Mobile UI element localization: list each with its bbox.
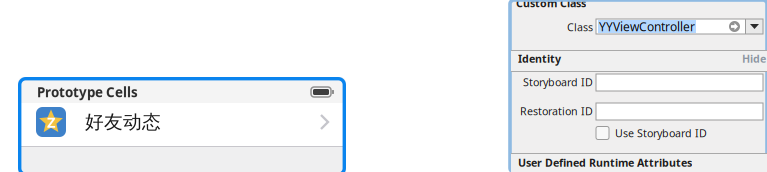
staticText: 好友动态 (85, 110, 161, 133)
staticText: Use Storyboard ID (615, 126, 707, 140)
staticText: User Defined Runtime Attributes (518, 155, 692, 170)
staticText: Identity (518, 51, 561, 66)
button[interactable]: Z (18, 103, 346, 146)
button[interactable]: Use Storyboard ID (596, 126, 707, 140)
staticText: Class (567, 20, 593, 34)
button[interactable]: Choose class (746, 19, 763, 34)
button[interactable]: Hide (742, 51, 766, 66)
staticText: Custom Class (516, 0, 586, 10)
staticText: Hide (742, 51, 766, 66)
staticText: Restoration ID (520, 104, 593, 118)
staticText: Z (47, 112, 55, 132)
staticText: Storyboard ID (523, 75, 593, 89)
staticText: YYViewController (599, 18, 695, 34)
staticText: Prototype Cells (37, 83, 138, 101)
